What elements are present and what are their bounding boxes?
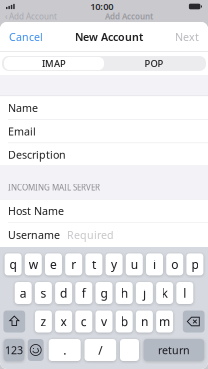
button[interactable]: a	[15, 282, 32, 304]
button[interactable]: d	[55, 282, 72, 304]
button[interactable]: g	[95, 282, 112, 304]
button[interactable]: p	[186, 253, 203, 275]
staticText: u	[131, 256, 138, 272]
staticText: k	[162, 285, 168, 301]
staticText: g	[100, 285, 107, 301]
button[interactable]: v	[95, 310, 112, 332]
staticText: 10:00	[90, 0, 113, 13]
staticText: f	[82, 285, 86, 301]
staticText: Cancel	[9, 30, 43, 44]
staticText: Description	[8, 147, 66, 162]
staticText: Add Account	[105, 11, 153, 22]
button[interactable]: Cancel	[0, 22, 52, 51]
button[interactable]: j	[136, 282, 153, 304]
button[interactable]: Delete	[183, 310, 205, 332]
button[interactable]: /	[84, 339, 116, 361]
staticText: m	[159, 313, 170, 329]
button[interactable]: Shift	[3, 310, 25, 332]
staticText: h	[121, 285, 128, 301]
staticText: ‹ Add Account	[5, 11, 57, 22]
staticText: n	[141, 313, 148, 329]
staticText: l	[183, 285, 186, 301]
staticText: x	[61, 313, 67, 329]
staticText: /	[98, 342, 102, 358]
staticText: Host Name	[8, 204, 64, 218]
staticText: s	[40, 285, 46, 301]
staticText: b	[121, 313, 128, 329]
button[interactable]: Emoji	[28, 339, 44, 361]
staticText: c	[81, 313, 87, 329]
button[interactable]: w	[25, 253, 42, 275]
staticText: return	[158, 343, 190, 357]
button[interactable]: x	[55, 310, 72, 332]
staticText: Next	[175, 30, 199, 44]
button[interactable]: t	[85, 253, 102, 275]
staticText: t	[92, 256, 96, 272]
staticText: j	[143, 285, 146, 301]
button[interactable]: r	[65, 253, 82, 275]
button[interactable]: q	[5, 253, 22, 275]
button[interactable]: y	[106, 253, 123, 275]
staticText: r	[71, 256, 76, 272]
button[interactable]: l	[176, 282, 193, 304]
button[interactable]: z	[35, 310, 52, 332]
button[interactable]: 123	[4, 339, 24, 361]
staticText: d	[60, 285, 67, 301]
button[interactable]: k	[156, 282, 173, 304]
staticText: New Account	[75, 30, 143, 44]
button[interactable]: h	[116, 282, 133, 304]
staticText: w	[29, 256, 38, 272]
button[interactable]: c	[75, 310, 92, 332]
staticText: .	[63, 342, 66, 358]
staticText: e	[50, 256, 57, 272]
button[interactable]: o	[166, 253, 183, 275]
button[interactable]: s	[35, 282, 52, 304]
button[interactable]: Next	[166, 22, 208, 51]
button[interactable]: i	[146, 253, 163, 275]
staticText: Username	[8, 228, 60, 242]
staticText: y	[111, 256, 117, 272]
staticText: Email	[8, 124, 36, 138]
staticText: z	[40, 313, 46, 329]
button[interactable]: .	[49, 339, 81, 361]
staticText: Required	[67, 228, 114, 242]
button[interactable]: f	[75, 282, 92, 304]
button[interactable]: POP	[104, 57, 204, 70]
staticText: POP	[144, 57, 163, 70]
staticText: 123	[5, 343, 23, 357]
button[interactable]: b	[116, 310, 133, 332]
staticText: a	[20, 285, 27, 301]
staticText: Name	[8, 101, 38, 115]
button[interactable]: IMAP	[4, 57, 104, 70]
button[interactable]: m	[156, 310, 173, 332]
staticText: q	[10, 256, 17, 272]
button[interactable]: n	[136, 310, 153, 332]
button[interactable]: e	[45, 253, 62, 275]
button[interactable]	[120, 339, 139, 361]
staticText: v	[101, 313, 107, 329]
staticText: i	[153, 256, 156, 272]
staticText: IMAP	[42, 57, 66, 70]
button[interactable]: return	[144, 339, 204, 361]
staticText: o	[171, 256, 178, 272]
staticText: p	[191, 256, 198, 272]
staticText: INCOMING MAIL SERVER	[8, 182, 100, 193]
button[interactable]: u	[126, 253, 143, 275]
